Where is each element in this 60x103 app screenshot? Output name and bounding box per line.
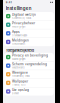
staticText: Privacybeheer — [12, 21, 35, 25]
button[interactable]: Privacybeheer — [4, 21, 54, 29]
button[interactable]: Apps — [4, 29, 54, 37]
button[interactable]: Digitaal welzijn — [4, 12, 54, 20]
button[interactable]: Uw opslag — [4, 87, 54, 96]
button[interactable]: Wallpaper — [4, 79, 54, 87]
staticText: Helderheid, tekst — [12, 75, 30, 78]
staticText: Digitaal welzijn — [12, 13, 36, 16]
button[interactable]: Weergave — [4, 70, 54, 78]
staticText: Weergave — [12, 71, 28, 74]
staticText: Schermtijd, focus — [12, 17, 31, 20]
staticText: Uw opslag — [12, 88, 29, 92]
staticText: Wachtwoord — [12, 66, 24, 69]
staticText: Geschiedenis — [12, 42, 25, 45]
button[interactable]: Privacy en beveiliging — [4, 53, 54, 61]
staticText: Beheer — [12, 92, 19, 95]
staticText: Privacy en beveiliging — [12, 54, 48, 57]
staticText: Wallpaper — [12, 79, 28, 83]
staticText: 9:41 — [6, 1, 12, 4]
staticText: Meldingen — [12, 38, 29, 42]
staticText: Instellingen — [6, 6, 32, 11]
staticText: Machtigingen — [12, 25, 25, 28]
button[interactable]: Meldingen — [4, 38, 54, 46]
staticText: Toegankelijkheid — [6, 48, 34, 52]
staticText: Apps — [12, 30, 20, 34]
staticText: Machtigingen — [12, 58, 25, 60]
staticText: Scherm vergrendeling — [12, 62, 47, 66]
staticText: Standaard-apps — [12, 34, 27, 37]
button[interactable]: Scherm vergrendeling — [4, 61, 54, 70]
staticText: Thema, stijl — [12, 83, 26, 86]
